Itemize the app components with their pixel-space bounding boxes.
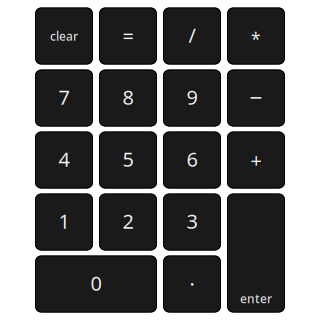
staticText: 6 (186, 146, 197, 172)
button[interactable]: enter (227, 193, 285, 312)
staticText: 0 (90, 270, 101, 296)
button[interactable]: 1 (35, 193, 93, 250)
staticText: 4 (58, 146, 69, 172)
button[interactable]: 5 (99, 131, 157, 188)
staticText: − (249, 82, 262, 112)
staticText: 7 (58, 84, 69, 110)
staticText: 3 (186, 208, 197, 234)
staticText: 2 (122, 208, 133, 234)
staticText: enter (240, 291, 272, 306)
staticText: · (189, 271, 194, 297)
button[interactable]: 9 (163, 69, 221, 126)
button[interactable]: * (227, 7, 285, 64)
button[interactable]: 7 (35, 69, 93, 126)
staticText: 8 (122, 84, 133, 110)
staticText: 5 (122, 146, 133, 172)
staticText: / (188, 22, 195, 48)
button[interactable]: 8 (99, 69, 157, 126)
button[interactable]: = (99, 7, 157, 64)
button[interactable]: 3 (163, 193, 221, 250)
button[interactable]: · (163, 255, 221, 312)
button[interactable]: − (227, 69, 285, 126)
staticText: = (122, 23, 133, 49)
staticText: clear (50, 28, 78, 44)
staticText: + (250, 147, 261, 173)
staticText: 9 (186, 84, 197, 110)
button[interactable]: 4 (35, 131, 93, 188)
button[interactable]: 0 (35, 255, 157, 312)
button[interactable]: 6 (163, 131, 221, 188)
staticText: * (251, 27, 261, 50)
button[interactable]: 2 (99, 193, 157, 250)
button[interactable]: + (227, 131, 285, 188)
staticText: 1 (58, 208, 69, 234)
button[interactable]: / (163, 7, 221, 64)
button[interactable]: clear (35, 7, 93, 64)
